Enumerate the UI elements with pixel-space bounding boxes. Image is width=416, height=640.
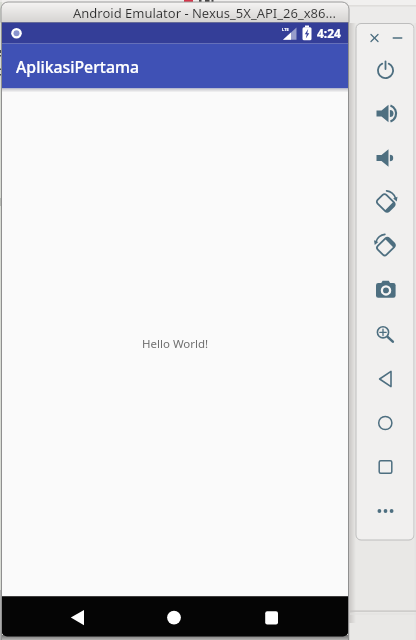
staticText: AplikasiPertama (16, 56, 139, 78)
button[interactable] (371, 453, 400, 481)
staticText: LTE (282, 27, 289, 32)
button[interactable] (371, 497, 400, 525)
staticText: Hello World! (142, 336, 209, 352)
button[interactable] (371, 273, 400, 301)
button[interactable] (46, 598, 108, 636)
staticText: 4:24 (317, 25, 341, 41)
button[interactable] (371, 99, 400, 127)
button[interactable] (367, 31, 382, 46)
button[interactable] (371, 365, 400, 393)
button[interactable] (371, 230, 400, 258)
button[interactable] (146, 598, 202, 636)
button[interactable] (390, 31, 405, 46)
button[interactable] (371, 187, 400, 215)
button[interactable] (371, 319, 400, 347)
button[interactable] (246, 598, 298, 636)
staticText: Android Emulator - Nexus_5X_API_26_x86..… (73, 4, 336, 22)
button[interactable] (371, 409, 400, 437)
button[interactable] (371, 56, 400, 84)
button[interactable] (371, 144, 400, 172)
